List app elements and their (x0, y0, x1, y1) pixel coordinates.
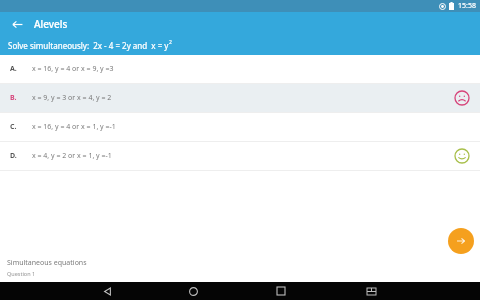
staticText: x = 16, y = 4 or x = 9, y =3 (32, 64, 454, 74)
staticText: Question 1 (7, 270, 36, 277)
staticText: 2 (169, 39, 172, 46)
staticText: 15:58 (458, 1, 476, 11)
staticText: A. (10, 64, 32, 74)
button[interactable]: Back (98, 282, 116, 300)
staticText: x = 9, y = 3 or x = 4, y = 2 (32, 93, 454, 103)
button[interactable]: Home (184, 282, 202, 300)
staticText: Simultaneous equations (7, 258, 87, 268)
staticText: Solve simultaneously: 2x - 4 = 2y and x … (8, 40, 169, 51)
button[interactable]: B. (0, 84, 480, 112)
button[interactable]: Keyboard (362, 282, 380, 300)
staticText: x = 16, y = 4 or x = 1, y =-1 (32, 122, 454, 132)
button[interactable]: C. (0, 113, 480, 141)
staticText: B. (10, 93, 32, 103)
button[interactable]: Recent apps (272, 282, 290, 300)
button[interactable]: Back (8, 15, 26, 33)
button[interactable]: Next question (448, 228, 474, 254)
button[interactable]: D. (0, 142, 480, 170)
staticText: C. (10, 122, 32, 132)
staticText: x = 4, y = 2 or x = 1, y =-1 (32, 151, 454, 161)
button[interactable]: A. (0, 55, 480, 83)
staticText: D. (10, 151, 32, 161)
staticText: Alevels (34, 17, 68, 31)
